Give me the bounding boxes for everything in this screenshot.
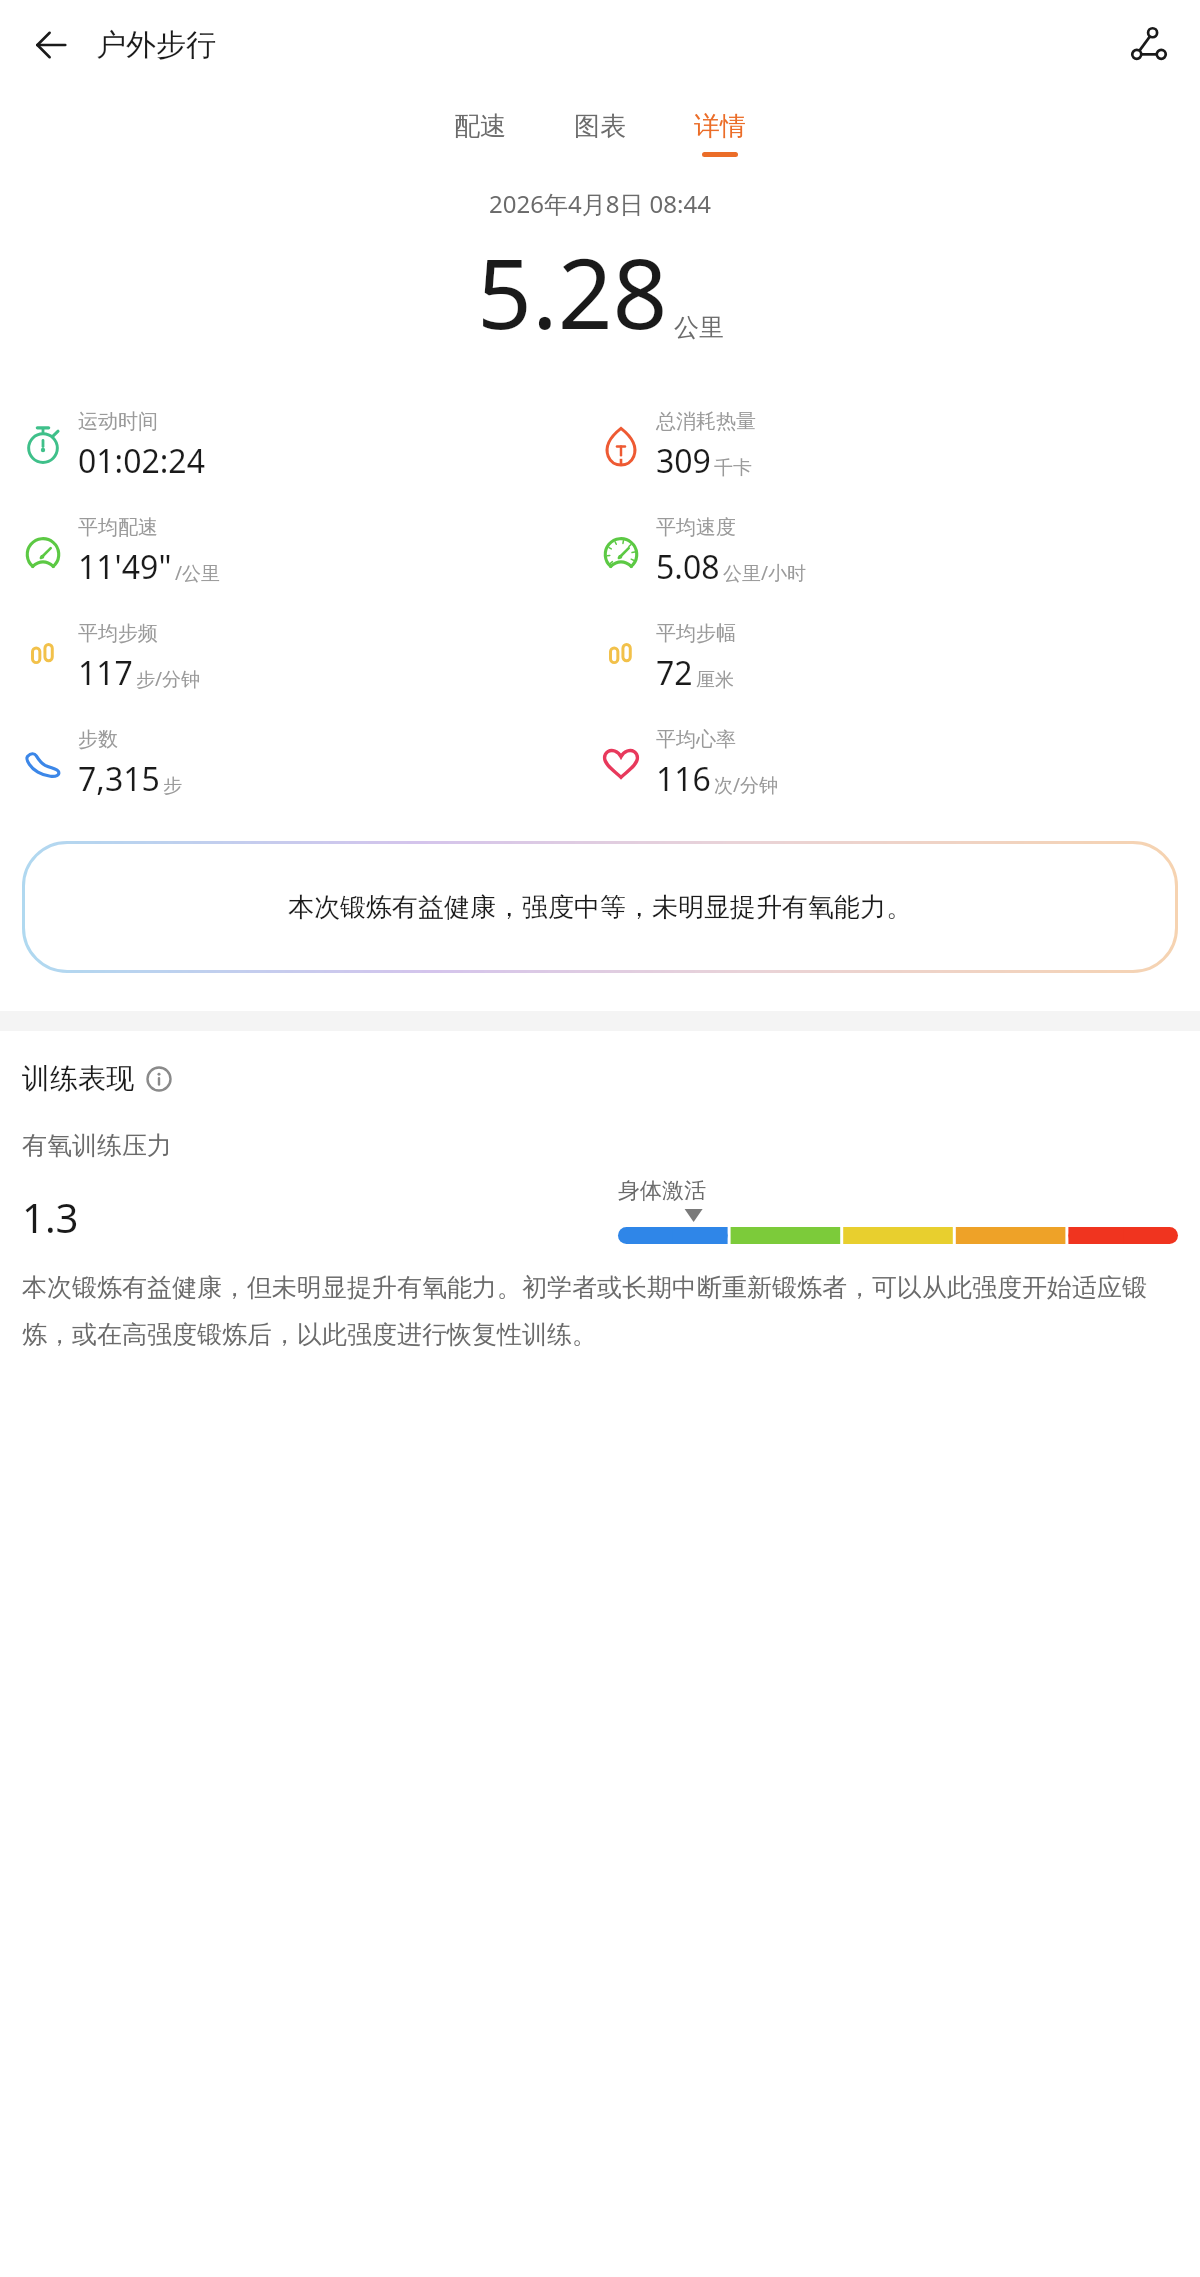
staticText: 72 [656, 651, 693, 695]
button[interactable]: Share [1120, 16, 1178, 74]
staticText: 次/分钟 [714, 772, 779, 798]
staticText: 千卡 [714, 456, 752, 480]
staticText: 01:02:24 [78, 439, 205, 483]
staticText: 309 [656, 439, 711, 483]
staticText: 图表 [574, 110, 626, 143]
staticText: 训练表现 [22, 1061, 134, 1096]
button[interactable]: 总消耗热量 [600, 409, 1200, 483]
staticText: 运动时间 [78, 409, 158, 434]
button[interactable]: 训练表现 [22, 1061, 172, 1096]
staticText: 户外步行 [96, 26, 216, 64]
staticText: 平均速度 [656, 515, 736, 540]
staticText: 117 [78, 651, 133, 695]
staticText: 116 [656, 757, 711, 801]
staticText: 详情 [694, 110, 746, 143]
staticText: 厘米 [696, 668, 734, 692]
staticText: 本次锻炼有益健康，强度中等，未明显提升有氧能力。 [288, 891, 912, 924]
button[interactable]: Back [22, 16, 80, 74]
staticText: 身体激活 [618, 1177, 706, 1205]
staticText: 步/分钟 [136, 666, 201, 692]
staticText: 总消耗热量 [656, 409, 756, 434]
button[interactable]: 运动时间 [22, 409, 600, 483]
button[interactable]: 平均速度 [600, 515, 1200, 589]
staticText: 5.08 [656, 545, 720, 589]
staticText: 平均步频 [78, 621, 158, 646]
button[interactable]: 平均配速 [22, 515, 600, 589]
button[interactable]: 配速 [454, 110, 506, 157]
staticText: 5.28 [477, 226, 668, 357]
staticText: /公里 [175, 560, 221, 586]
staticText: 7,315 [78, 757, 160, 801]
staticText: 公里 [674, 312, 724, 343]
staticText: 平均步幅 [656, 621, 736, 646]
staticText: 有氧训练压力 [22, 1130, 172, 1161]
button[interactable]: 本次锻炼有益健康，强度中等，未明显提升有氧能力。 [22, 841, 1178, 973]
staticText: 平均心率 [656, 727, 736, 752]
staticText: 本次锻炼有益健康，但未明显提升有氧能力。初学者或长期中断重新锻炼者，可以从此强度… [22, 1272, 1178, 1351]
button[interactable]: 平均步幅 [600, 621, 1200, 695]
staticText: 1.3 [22, 1190, 79, 1244]
button[interactable]: 步数 [22, 727, 600, 801]
staticText: 11'49" [78, 545, 172, 589]
button[interactable]: 平均步频 [22, 621, 600, 695]
button[interactable]: 详情 [694, 110, 746, 157]
staticText: 公里/小时 [723, 560, 807, 586]
staticText: 配速 [454, 110, 506, 143]
button[interactable]: 平均心率 [600, 727, 1200, 801]
staticText: 步数 [78, 727, 118, 752]
staticText: 平均配速 [78, 515, 158, 540]
staticText: 2026年4月8日 08:44 [489, 187, 711, 220]
button[interactable]: 图表 [574, 110, 626, 157]
staticText: 步 [163, 774, 182, 798]
